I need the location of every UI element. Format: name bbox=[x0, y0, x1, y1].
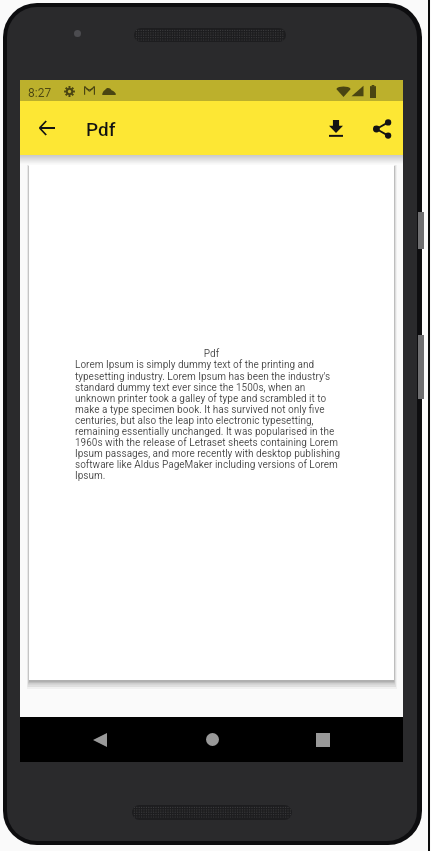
staticText: 8:27 bbox=[28, 86, 52, 100]
button[interactable]: Navigate up bbox=[24, 105, 70, 151]
button[interactable]: Share bbox=[359, 106, 405, 152]
staticText: Lorem Ipsum is simply dummy text of the … bbox=[75, 359, 375, 482]
button[interactable]: Back bbox=[68, 717, 132, 762]
button[interactable]: Recent apps bbox=[291, 717, 355, 762]
staticText: Pdf bbox=[29, 348, 394, 360]
button[interactable]: Download bbox=[313, 105, 359, 151]
staticText: Pdf bbox=[86, 118, 116, 140]
button[interactable]: Home bbox=[180, 717, 244, 762]
